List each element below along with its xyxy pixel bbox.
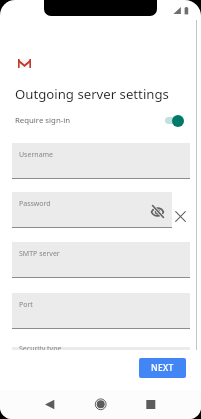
- staticText: Require sign-in: [15, 115, 71, 126]
- staticText: Username: [19, 150, 54, 160]
- button[interactable]: Home: [87, 390, 115, 418]
- staticText: SMTP server: [19, 249, 60, 259]
- staticText: Outgoing server settings: [15, 85, 169, 103]
- staticText: Security type: [19, 344, 62, 350]
- button[interactable]: NEXT: [139, 358, 186, 378]
- staticText: Port: [19, 300, 33, 310]
- button[interactable]: [164, 113, 188, 127]
- button[interactable]: Back: [36, 390, 64, 418]
- staticText: NEXT: [151, 362, 174, 374]
- staticText: Password: [19, 199, 51, 209]
- button[interactable]: Recents: [137, 390, 165, 418]
- button[interactable]: Password: [12, 192, 172, 228]
- button[interactable]: Port: [12, 293, 190, 329]
- button[interactable]: SMTP server: [12, 242, 190, 278]
- button[interactable]: Show password: [151, 205, 164, 218]
- button[interactable]: Clear: [175, 211, 186, 222]
- button[interactable]: Require sign-in: [11, 111, 189, 131]
- button[interactable]: Username: [12, 143, 190, 179]
